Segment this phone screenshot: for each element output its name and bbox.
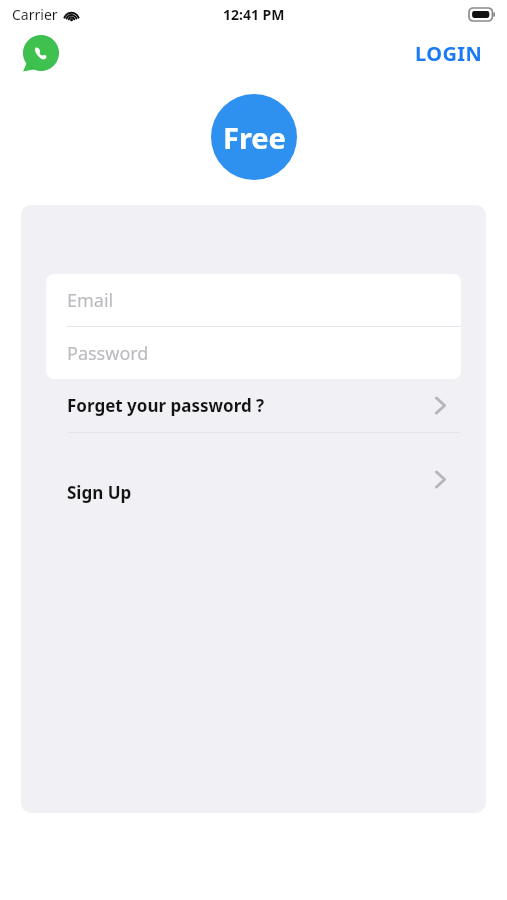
staticText: LOGIN	[415, 40, 483, 67]
button[interactable]: Free	[211, 94, 297, 180]
button[interactable]: Sign Up	[21, 433, 486, 527]
button[interactable]: WhatsApp	[18, 30, 64, 76]
staticText: Email	[67, 288, 114, 313]
button[interactable]: Forget your password ?	[21, 379, 486, 432]
staticText: Password	[67, 341, 149, 366]
button[interactable]: LOGIN	[409, 36, 489, 71]
staticText: 12:41 PM	[223, 5, 285, 24]
staticText: Carrier	[12, 5, 58, 24]
staticText: Forget your password ?	[67, 394, 265, 417]
staticText: Sign Up	[67, 481, 132, 504]
button[interactable]: Email	[46, 274, 461, 326]
staticText: Free	[223, 118, 286, 157]
button[interactable]: Password	[46, 327, 461, 379]
